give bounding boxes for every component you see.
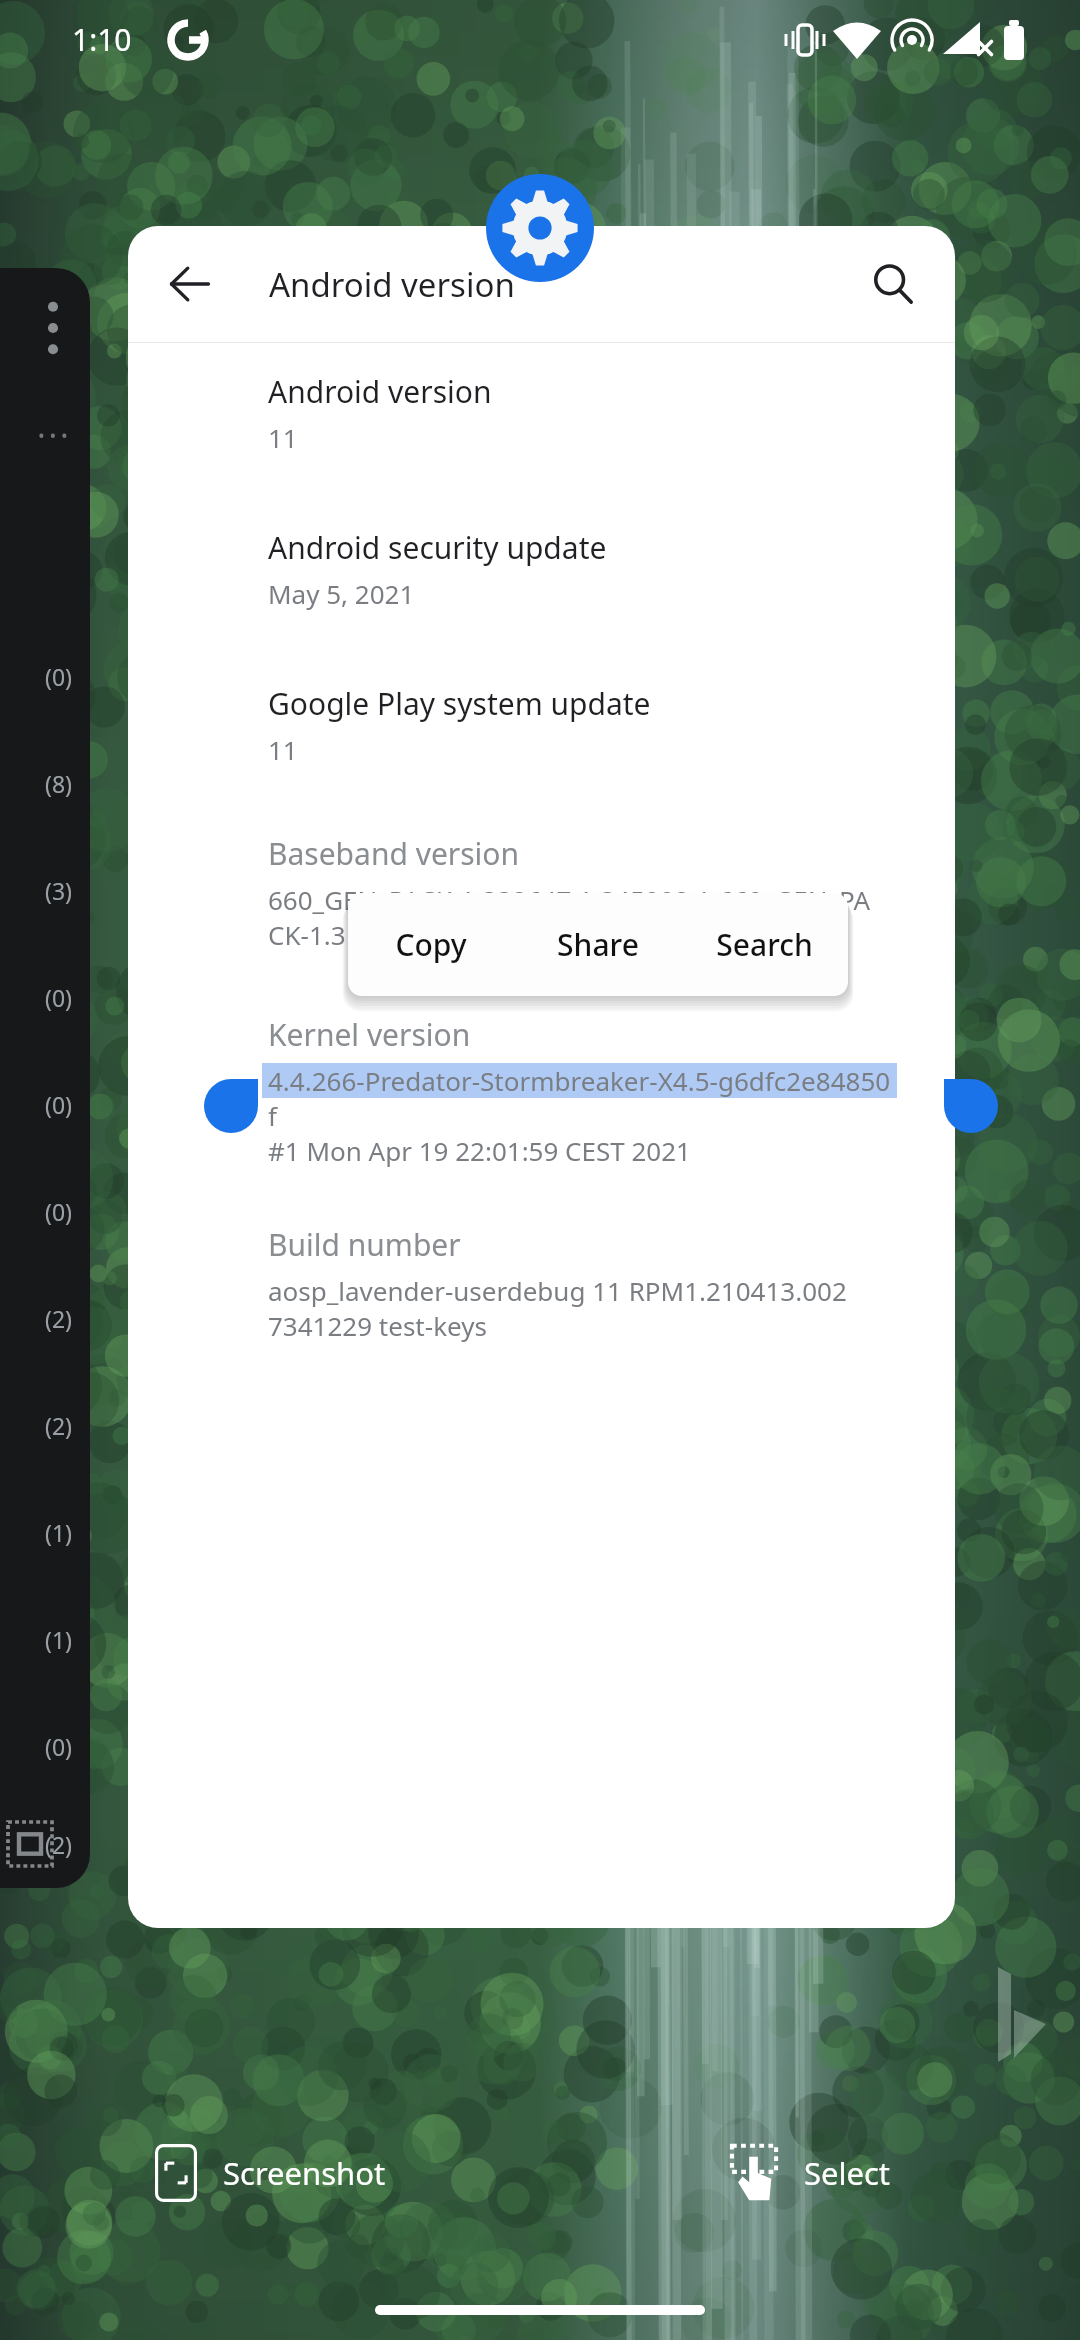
button[interactable]: Search	[681, 893, 848, 996]
staticText: CK-1.3	[268, 917, 346, 952]
staticText: (0)	[45, 661, 72, 692]
staticText: Kernel version	[268, 1014, 471, 1055]
staticText: (0)	[45, 1089, 72, 1120]
button[interactable]: Build number	[128, 1224, 955, 1343]
staticText: Android version	[268, 371, 492, 412]
staticText: #1 Mon Apr 19 22:01:59 CEST 2021	[268, 1133, 691, 1168]
staticText: • • •	[38, 423, 68, 448]
staticText: 11	[268, 420, 298, 455]
button[interactable]: Back	[150, 244, 230, 324]
staticText: 4.4.266-Predator-Stormbreaker-X4.5-g6dfc…	[268, 1063, 891, 1098]
button[interactable]: • • •	[0, 268, 90, 1888]
staticText: Google Play system update	[268, 683, 651, 724]
staticText: Android version	[269, 262, 515, 307]
staticText: (2)	[45, 1303, 72, 1334]
staticText: Search	[716, 924, 813, 965]
staticText: (8)	[45, 768, 72, 799]
staticText: Screenshot	[223, 2152, 386, 2194]
staticText: aosp_lavender-userdebug 11 RPM1.210413.0…	[268, 1273, 847, 1308]
staticText: (0)	[45, 982, 72, 1013]
button[interactable]: Copy	[348, 893, 514, 996]
staticText: (1)	[45, 1517, 72, 1548]
staticText: (0)	[45, 1731, 72, 1762]
button[interactable]: Google Play system update	[128, 683, 955, 767]
staticText: 7341229 test-keys	[268, 1308, 487, 1343]
staticText: (1)	[45, 1624, 72, 1655]
staticText: (2)	[45, 1410, 72, 1441]
staticText: f	[268, 1098, 277, 1133]
staticText: (2)	[45, 1829, 72, 1860]
staticText: May 5, 2021	[268, 576, 415, 611]
staticText: Baseband version	[268, 833, 520, 874]
button[interactable]: Search	[853, 244, 933, 324]
staticText: Share	[557, 924, 639, 965]
staticText: 1:10	[72, 19, 132, 60]
button[interactable]: Screenshot	[135, 2130, 406, 2216]
button[interactable]: Android security update	[128, 527, 955, 611]
button[interactable]: Android version	[128, 371, 955, 455]
staticText: 660_GEN_PACK-1.338647.1.345992.1,660_GEN…	[268, 882, 871, 917]
button[interactable]: Kernel version	[128, 1014, 955, 1168]
button[interactable]: Share	[514, 893, 681, 996]
button[interactable]: Baseband version	[128, 833, 955, 952]
staticText: Android security update	[268, 527, 607, 568]
staticText: 11	[268, 732, 298, 767]
staticText: (3)	[45, 875, 72, 906]
button[interactable]: Select	[710, 2130, 911, 2216]
staticText: Copy	[395, 924, 467, 965]
staticText: (0)	[45, 1196, 72, 1227]
staticText: Select	[804, 2152, 891, 2194]
staticText: Build number	[268, 1224, 461, 1265]
